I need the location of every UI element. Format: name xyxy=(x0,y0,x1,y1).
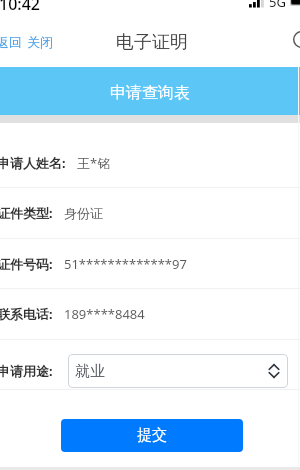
staticText: 王*铭 xyxy=(77,154,111,172)
staticText: 申请用途 xyxy=(0,363,49,379)
staticText: 就业 xyxy=(75,362,105,381)
staticText: 申请人姓名 xyxy=(0,155,62,171)
staticText: ： xyxy=(44,256,57,272)
staticText: 5G xyxy=(269,0,286,11)
other: More options xyxy=(293,31,300,48)
staticText: 提交 xyxy=(137,426,167,445)
button[interactable]: 返回 xyxy=(0,34,53,50)
button[interactable]: 提交 xyxy=(61,419,243,452)
staticText: ： xyxy=(44,205,57,221)
staticText: 189****8484 xyxy=(64,305,145,323)
staticText: 关闭 xyxy=(27,34,53,50)
staticText: 身份证 xyxy=(64,205,103,221)
staticText: 10:42 xyxy=(0,0,40,15)
staticText: ： xyxy=(44,306,57,322)
staticText: 证件类型 xyxy=(0,205,49,221)
staticText: 联系电话 xyxy=(0,306,49,322)
staticText: 申请查询表 xyxy=(110,83,190,103)
staticText: 证件号码 xyxy=(0,256,49,272)
staticText: ： xyxy=(57,155,70,171)
button[interactable]: 就业 xyxy=(68,354,288,388)
staticText: 电子证明 xyxy=(116,31,188,54)
staticText: 返回 xyxy=(0,34,22,50)
staticText: 51*************97 xyxy=(64,255,187,273)
staticText: ： xyxy=(44,363,57,379)
